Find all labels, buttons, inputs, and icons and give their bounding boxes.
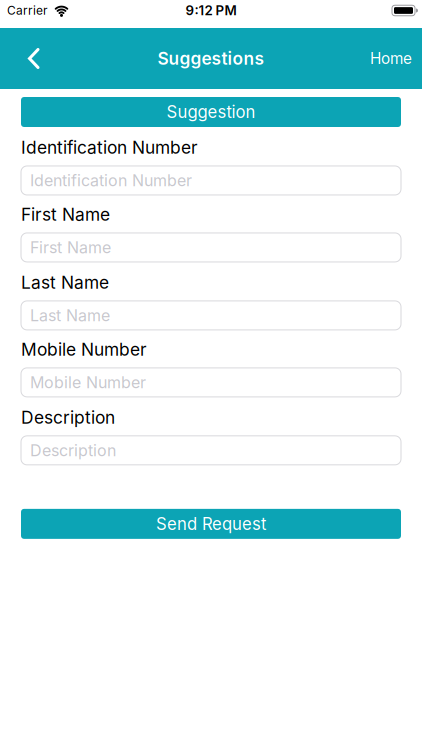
staticText: Suggestions [157,48,264,69]
button[interactable]: Home [370,49,422,68]
staticText: Last Name [21,272,109,293]
staticText: Identification Number [21,137,198,158]
button[interactable]: Identification Number [21,166,401,195]
button[interactable]: Suggestion [21,97,401,127]
staticText: Carrier [7,3,48,18]
staticText: Description [30,441,116,460]
staticText: Home [370,49,412,68]
staticText: Send Request [156,514,266,534]
staticText: Suggestion [166,102,255,122]
button[interactable]: Mobile Number [21,368,401,397]
staticText: Last Name [30,306,110,325]
staticText: Mobile Number [30,373,146,392]
button[interactable]: Send Request [21,509,401,539]
staticText: First Name [30,238,111,257]
staticText: Mobile Number [21,339,147,360]
staticText: Identification Number [30,171,192,190]
button[interactable]: Last Name [21,301,401,330]
button[interactable] [0,48,50,69]
staticText: 9:12 PM [185,2,236,18]
button[interactable]: First Name [21,233,401,262]
staticText: Description [21,407,115,428]
button[interactable]: Description [21,436,401,465]
staticText: First Name [21,204,110,225]
